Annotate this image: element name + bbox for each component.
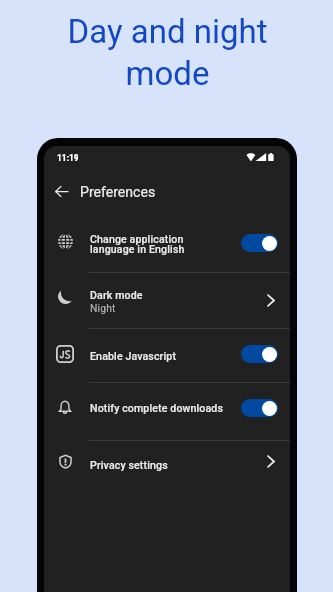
staticText: 11:19 bbox=[57, 152, 79, 163]
staticText: Privacy settings bbox=[90, 459, 168, 471]
staticText: Night bbox=[90, 302, 116, 314]
staticText: Enable Javascript bbox=[90, 350, 177, 362]
button[interactable]: Change application language in English bbox=[44, 218, 290, 272]
button[interactable]: Toggle setting bbox=[241, 399, 278, 417]
button[interactable]: Notify complete downloads bbox=[44, 383, 290, 439]
staticText: Change application language in English bbox=[90, 233, 185, 256]
button[interactable]: Toggle setting bbox=[241, 234, 278, 252]
button[interactable]: Enable Javascript bbox=[44, 329, 290, 382]
staticText: Notify complete downloads bbox=[90, 402, 224, 414]
button[interactable]: Privacy settings bbox=[44, 440, 290, 494]
button[interactable]: Toggle setting bbox=[241, 345, 278, 363]
staticText: Day and night mode bbox=[1, 12, 333, 93]
staticText: Preferences bbox=[80, 184, 156, 201]
button[interactable]: Dark mode bbox=[44, 273, 290, 328]
staticText: Dark mode bbox=[90, 289, 143, 301]
button[interactable]: Back bbox=[51, 181, 71, 201]
